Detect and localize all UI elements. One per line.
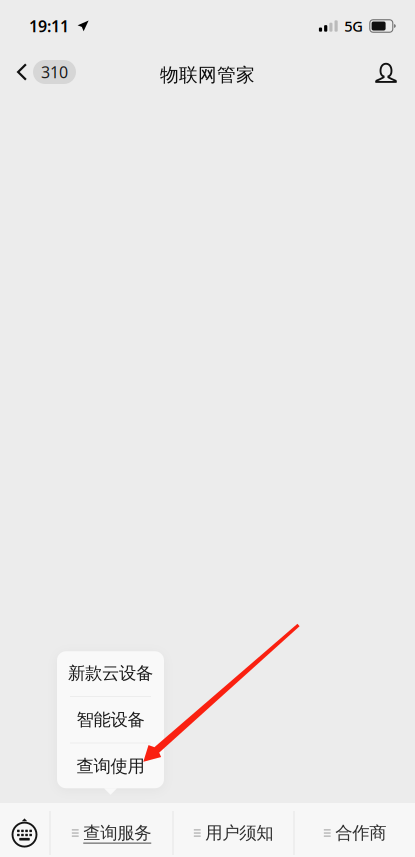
- button[interactable]: Back: [0, 51, 76, 93]
- button[interactable]: 合作商: [294, 809, 415, 857]
- button[interactable]: 智能设备: [57, 697, 164, 742]
- button[interactable]: 新款云设备: [57, 650, 164, 696]
- staticText: 用户须知: [205, 822, 273, 844]
- staticText: 物联网管家: [160, 63, 255, 86]
- staticText: 查询使用: [76, 756, 144, 777]
- staticText: 查询服务: [83, 822, 151, 844]
- staticText: 新款云设备: [68, 663, 153, 684]
- staticText: 310: [41, 61, 68, 83]
- button[interactable]: 查询使用: [57, 743, 164, 789]
- button[interactable]: 用户须知: [173, 809, 293, 857]
- button[interactable]: Profile: [361, 51, 415, 95]
- staticText: 19:11: [29, 15, 69, 37]
- staticText: 智能设备: [76, 709, 144, 730]
- button[interactable]: 查询服务: [50, 809, 172, 857]
- staticText: 合作商: [335, 822, 386, 844]
- staticText: 5G: [344, 16, 363, 36]
- button[interactable]: Keyboard: [0, 809, 49, 857]
